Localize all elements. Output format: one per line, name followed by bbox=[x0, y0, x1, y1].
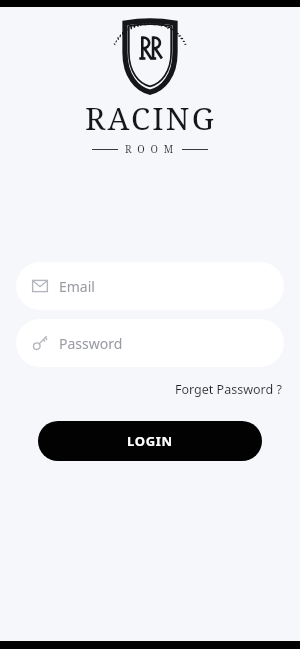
staticText: Forget Password ? bbox=[175, 381, 282, 398]
button[interactable]: Email bbox=[16, 262, 284, 310]
other: Password bbox=[32, 335, 48, 351]
other: Email bbox=[32, 278, 48, 294]
button[interactable]: Password bbox=[16, 319, 284, 367]
staticText: Password bbox=[59, 334, 123, 353]
staticText: R O O M bbox=[125, 142, 175, 156]
staticText: LOGIN bbox=[127, 432, 173, 450]
staticText: Email bbox=[59, 277, 95, 296]
staticText: RACING bbox=[85, 97, 216, 139]
button[interactable]: Forget Password ? bbox=[173, 379, 284, 400]
button[interactable]: LOGIN bbox=[38, 421, 262, 461]
